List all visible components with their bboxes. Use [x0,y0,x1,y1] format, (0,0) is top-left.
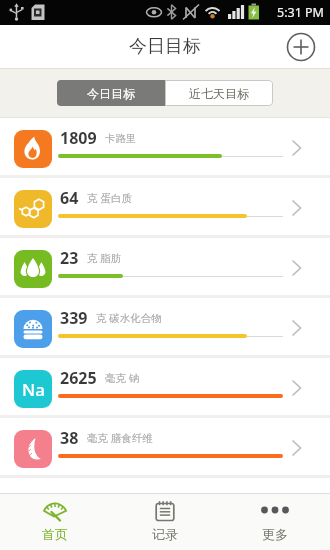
button[interactable]: 339 [0,298,330,358]
staticText: 38 [60,427,79,449]
staticText: 23 [60,247,79,269]
staticText: 毫克 膳食纤维 [87,431,153,445]
button[interactable]: 更多 [220,493,330,550]
button[interactable]: 64 [0,178,330,238]
staticText: 1809 [60,127,97,149]
button[interactable]: 23 [0,238,330,298]
staticText: 近七天目标 [189,86,249,101]
staticText: 首页 [42,526,68,542]
button[interactable]: 记录 [110,493,220,550]
button[interactable]: 1809 [0,118,330,178]
staticText: 毫克 钠 [105,371,140,385]
staticText: 5:31 PM [277,4,324,21]
staticText: 更多 [262,526,288,542]
staticText: 2625 [60,367,97,389]
staticText: 今日目标 [87,86,135,101]
staticText: 记录 [152,526,178,542]
staticText: 克 碳水化合物 [96,311,162,325]
button[interactable]: 今日目标 [57,80,165,106]
button[interactable] [286,32,316,62]
button[interactable]: 近七天目标 [165,80,273,106]
button[interactable]: 首页 [0,493,110,550]
staticText: 339 [60,307,88,329]
staticText: 克 脂肪 [87,251,122,265]
staticText: 卡路里 [105,132,137,145]
staticText: 64 [60,187,79,209]
button[interactable]: Na [0,358,330,418]
staticText: 今日目标 [129,35,201,58]
staticText: Na [22,378,45,401]
staticText: 克 蛋白质 [87,191,132,205]
button[interactable]: 38 [0,418,330,478]
